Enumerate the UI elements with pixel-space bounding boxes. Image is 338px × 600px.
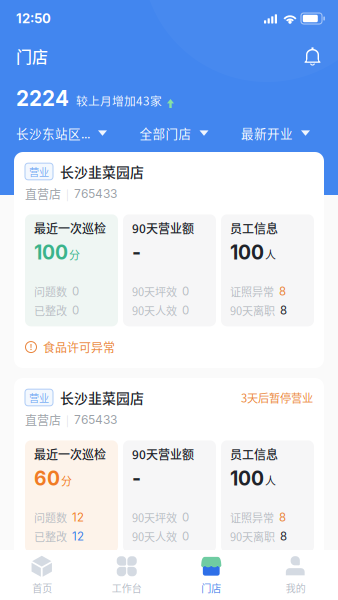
staticText: 0 (72, 284, 79, 298)
button[interactable]: 全部门店 (139, 124, 208, 142)
staticText: 90天坪效 (132, 283, 177, 299)
staticText: | (66, 412, 69, 427)
staticText: 8 (280, 303, 287, 317)
staticText: 90天营业额 (132, 445, 194, 463)
button[interactable]: 我的 (253, 550, 338, 600)
staticText: 765433 (74, 186, 117, 201)
staticText: 门店 (201, 581, 221, 595)
staticText: 最近一次巡检 (34, 219, 106, 237)
button[interactable]: 最新开业 (241, 124, 310, 142)
staticText: 90天营业额 (132, 219, 194, 237)
staticText: 最近一次巡检 (34, 445, 106, 463)
button[interactable]: 工作台 (84, 550, 169, 600)
staticText: 营业 (29, 164, 49, 179)
staticText: 8 (279, 510, 286, 524)
staticText: 分 (61, 473, 72, 489)
staticText: 0 (182, 284, 189, 298)
staticText: 首页 (32, 581, 52, 595)
staticText: 90天离职 (230, 302, 275, 318)
staticText: 直营店 (25, 185, 61, 202)
staticText: 长沙韭菜园店 (60, 161, 144, 182)
staticText: 问题数 (34, 283, 67, 299)
staticText: 证照异常 (230, 283, 274, 299)
button[interactable]: 长沙东站区... (16, 124, 107, 142)
staticText: 分 (69, 247, 80, 263)
staticText: 90天人效 (132, 302, 177, 318)
button[interactable]: 首页 (0, 550, 84, 600)
button[interactable]: 通知 (302, 45, 323, 67)
staticText: 已整改 (34, 528, 67, 544)
staticText: 90天人效 (132, 528, 177, 544)
button[interactable]: 营业 (14, 378, 324, 594)
staticText: 食品许可异常 (43, 564, 115, 582)
staticText: 0 (72, 303, 79, 317)
staticText: 较上月增加43家 (76, 92, 162, 109)
staticText: 3天后暂停营业 (241, 389, 313, 406)
staticText: 人 (265, 247, 276, 263)
staticText: - (132, 467, 141, 490)
staticText: 100 (230, 241, 264, 264)
staticText: 员工信息 (230, 219, 278, 237)
button[interactable]: 营业 (14, 152, 324, 368)
staticText: 765433 (74, 412, 117, 427)
staticText: 员工信息 (230, 445, 278, 463)
staticText: 8 (280, 529, 287, 543)
staticText: 工作台 (112, 581, 142, 595)
staticText: 12:50 (16, 11, 51, 26)
staticText: 直营店 (25, 411, 61, 428)
staticText: 人 (265, 473, 276, 489)
staticText: 长沙东站区... (16, 124, 90, 142)
staticText: 长沙韭菜园店 (60, 387, 144, 408)
staticText: 100 (230, 467, 264, 490)
staticText: 证照异常 (230, 509, 274, 525)
staticText: 食品许可异常 (43, 338, 115, 356)
staticText: 最新开业 (241, 124, 293, 142)
staticText: 100 (34, 241, 68, 264)
staticText: 90天坪效 (132, 509, 177, 525)
staticText: 8 (279, 284, 286, 298)
staticText: 0 (182, 529, 189, 543)
staticText: 12 (72, 510, 84, 524)
staticText: 营业 (29, 390, 49, 405)
staticText: 门店 (16, 44, 48, 68)
staticText: 0 (182, 303, 189, 317)
staticText: | (66, 186, 69, 201)
staticText: 全部门店 (139, 124, 191, 142)
staticText: 已整改 (34, 302, 67, 318)
staticText: 12 (72, 529, 84, 543)
staticText: 问题数 (34, 509, 67, 525)
staticText: 我的 (286, 581, 306, 595)
staticText: - (132, 241, 141, 264)
staticText: 2224 (16, 86, 69, 111)
staticText: 0 (182, 510, 189, 524)
button[interactable]: 门店 (169, 550, 253, 600)
staticText: 60 (34, 467, 60, 490)
staticText: 90天离职 (230, 528, 275, 544)
